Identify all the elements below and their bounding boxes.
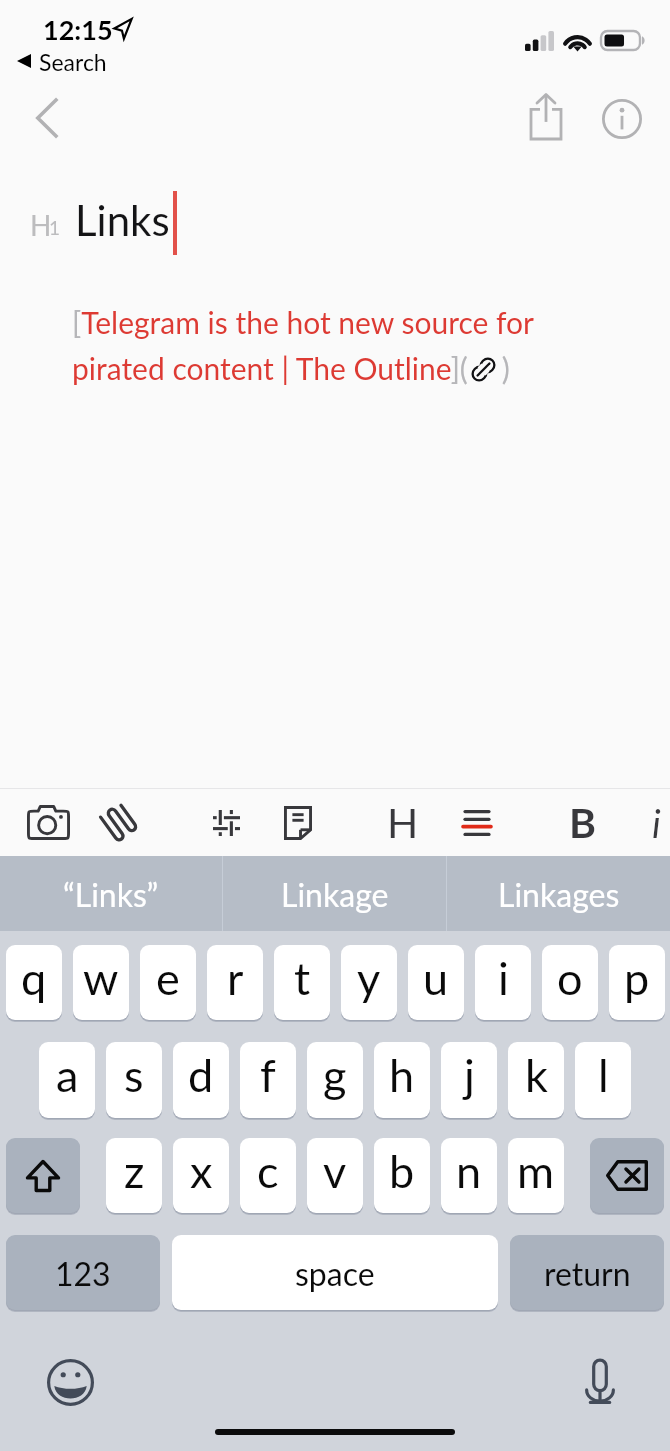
staticText: x	[190, 1144, 213, 1198]
staticText: j	[464, 1048, 475, 1102]
staticText: d	[188, 1048, 214, 1102]
button[interactable]: Formatting options	[189, 789, 263, 856]
staticText: y	[357, 951, 381, 1005]
button[interactable]: space	[172, 1235, 498, 1310]
button[interactable]: return	[510, 1235, 664, 1310]
button[interactable]: Shift	[6, 1138, 80, 1213]
staticText: H	[387, 798, 419, 847]
button[interactable]: B	[545, 789, 619, 856]
button[interactable]: Share	[517, 88, 577, 148]
button[interactable]: Linkage	[223, 856, 446, 931]
button[interactable]: d	[173, 1042, 229, 1118]
button[interactable]: Camera	[11, 789, 85, 856]
other: Camera	[27, 805, 70, 840]
button[interactable]: v	[307, 1138, 363, 1213]
other: Note	[284, 806, 312, 840]
staticText: z	[124, 1144, 145, 1198]
button[interactable]: k	[508, 1042, 564, 1118]
staticText: e	[156, 951, 180, 1005]
button[interactable]: b	[374, 1138, 430, 1213]
button[interactable]: i	[475, 945, 531, 1020]
button[interactable]: l	[575, 1042, 631, 1118]
button[interactable]: Dictate	[570, 1352, 630, 1412]
button[interactable]: List style	[440, 789, 514, 856]
staticText: u	[423, 951, 449, 1005]
staticText: r	[227, 951, 244, 1005]
other: Scribble	[105, 807, 132, 838]
staticText: s	[124, 1048, 144, 1102]
staticText: Search	[39, 48, 107, 76]
staticText: b	[389, 1144, 415, 1198]
staticText: Linkages	[498, 875, 620, 913]
staticText: n	[456, 1144, 482, 1198]
staticText: “Links”	[63, 875, 159, 913]
button[interactable]: o	[542, 945, 598, 1020]
staticText: B	[569, 798, 596, 847]
button[interactable]: i	[619, 789, 670, 856]
button[interactable]: z	[106, 1138, 162, 1213]
button[interactable]: Backspace	[590, 1138, 664, 1213]
staticText: space	[295, 1254, 375, 1292]
staticText: i	[652, 800, 661, 846]
button[interactable]: y	[341, 945, 397, 1020]
staticText: h	[389, 1048, 415, 1102]
staticText: 12:15	[43, 13, 113, 45]
button[interactable]: x	[173, 1138, 229, 1213]
button[interactable]: n	[441, 1138, 497, 1213]
staticText: t	[294, 951, 311, 1005]
staticText: 123	[55, 1254, 111, 1292]
button[interactable]: f	[240, 1042, 296, 1118]
button[interactable]: “Links”	[0, 856, 222, 931]
staticText: return	[544, 1254, 631, 1292]
button[interactable]: s	[106, 1042, 162, 1118]
staticText: Links	[75, 195, 170, 245]
button[interactable]: m	[508, 1138, 564, 1213]
button[interactable]: u	[408, 945, 464, 1020]
staticText: w	[83, 951, 119, 1005]
button[interactable]: h	[374, 1042, 430, 1118]
staticText: f	[260, 1048, 276, 1102]
staticText: Linkage	[281, 875, 389, 913]
staticText: o	[557, 951, 583, 1005]
button[interactable]: c	[240, 1138, 296, 1213]
other: Formatting options	[213, 809, 240, 837]
staticText: l	[598, 1048, 609, 1102]
staticText: m	[517, 1144, 555, 1198]
staticText: H	[30, 208, 52, 242]
button[interactable]: p	[609, 945, 665, 1020]
button[interactable]: q	[6, 945, 62, 1020]
staticText: c	[257, 1144, 279, 1198]
button[interactable]: 123	[6, 1235, 160, 1310]
button[interactable]: Back	[8, 90, 66, 148]
staticText: i	[498, 951, 509, 1005]
staticText: [Telegram is the hot new source for pira…	[72, 304, 567, 386]
button[interactable]: a	[39, 1042, 95, 1118]
other: List style	[464, 810, 490, 836]
button[interactable]: j	[441, 1042, 497, 1118]
staticText: p	[624, 951, 650, 1005]
button[interactable]: w	[73, 945, 129, 1020]
button[interactable]: e	[140, 945, 196, 1020]
staticText: v	[323, 1144, 347, 1198]
button[interactable]: Linkages	[447, 856, 670, 931]
button[interactable]: Scribble	[81, 789, 155, 856]
staticText: g	[323, 1048, 347, 1102]
staticText: 1	[49, 216, 61, 239]
staticText: q	[21, 951, 47, 1005]
button[interactable]: r	[207, 945, 263, 1020]
button[interactable]: Emoji keyboard	[40, 1352, 100, 1412]
staticText: k	[525, 1048, 548, 1102]
button[interactable]: t	[274, 945, 330, 1020]
button[interactable]: H	[366, 789, 440, 856]
button[interactable]: Info	[592, 89, 652, 149]
staticText: a	[56, 1048, 79, 1102]
button[interactable]: Note	[261, 789, 335, 856]
button[interactable]: g	[307, 1042, 363, 1118]
